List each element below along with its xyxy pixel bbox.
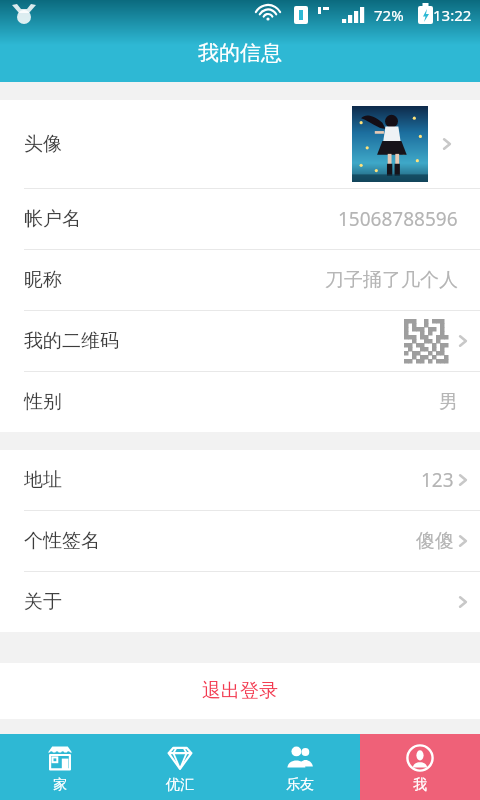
button[interactable]: 地址 [0, 450, 480, 510]
staticText: 性别 [24, 390, 62, 414]
button[interactable]: 退出登录 [0, 663, 480, 719]
staticText: 13:22 [433, 5, 472, 25]
staticText: 头像 [24, 132, 62, 156]
staticText: 我 [413, 776, 427, 794]
button[interactable]: 关于 [0, 572, 480, 632]
button[interactable]: 性别 [0, 372, 480, 432]
staticText: 123 [421, 467, 454, 493]
button[interactable]: 帐户名 [0, 189, 480, 249]
staticText: 乐友 [286, 776, 314, 794]
staticText: 关于 [24, 590, 62, 614]
button[interactable]: 昵称 [0, 250, 480, 310]
button[interactable]: 我的二维码 [0, 311, 480, 371]
staticText: 地址 [24, 468, 62, 492]
button[interactable]: 头像 [0, 100, 480, 188]
staticText: 帐户名 [24, 207, 81, 231]
staticText: 家 [53, 776, 67, 794]
staticText: 傻傻 [416, 529, 454, 553]
staticText: 昵称 [24, 268, 62, 292]
button[interactable]: 家 [0, 734, 120, 800]
staticText: 男 [439, 390, 458, 414]
staticText: 72% [374, 5, 404, 25]
staticText: 我的信息 [198, 40, 282, 66]
staticText: 个性签名 [24, 529, 100, 553]
button[interactable]: 乐友 [240, 734, 360, 800]
staticText: 优汇 [166, 776, 194, 794]
button[interactable]: 优汇 [120, 734, 240, 800]
staticText: 退出登录 [202, 679, 278, 703]
button[interactable]: 个性签名 [0, 511, 480, 571]
staticText: 刀子捅了几个人 [325, 268, 458, 292]
staticText: 15068788596 [338, 206, 458, 232]
button[interactable]: 我 [360, 734, 480, 800]
staticText: 我的二维码 [24, 329, 119, 353]
